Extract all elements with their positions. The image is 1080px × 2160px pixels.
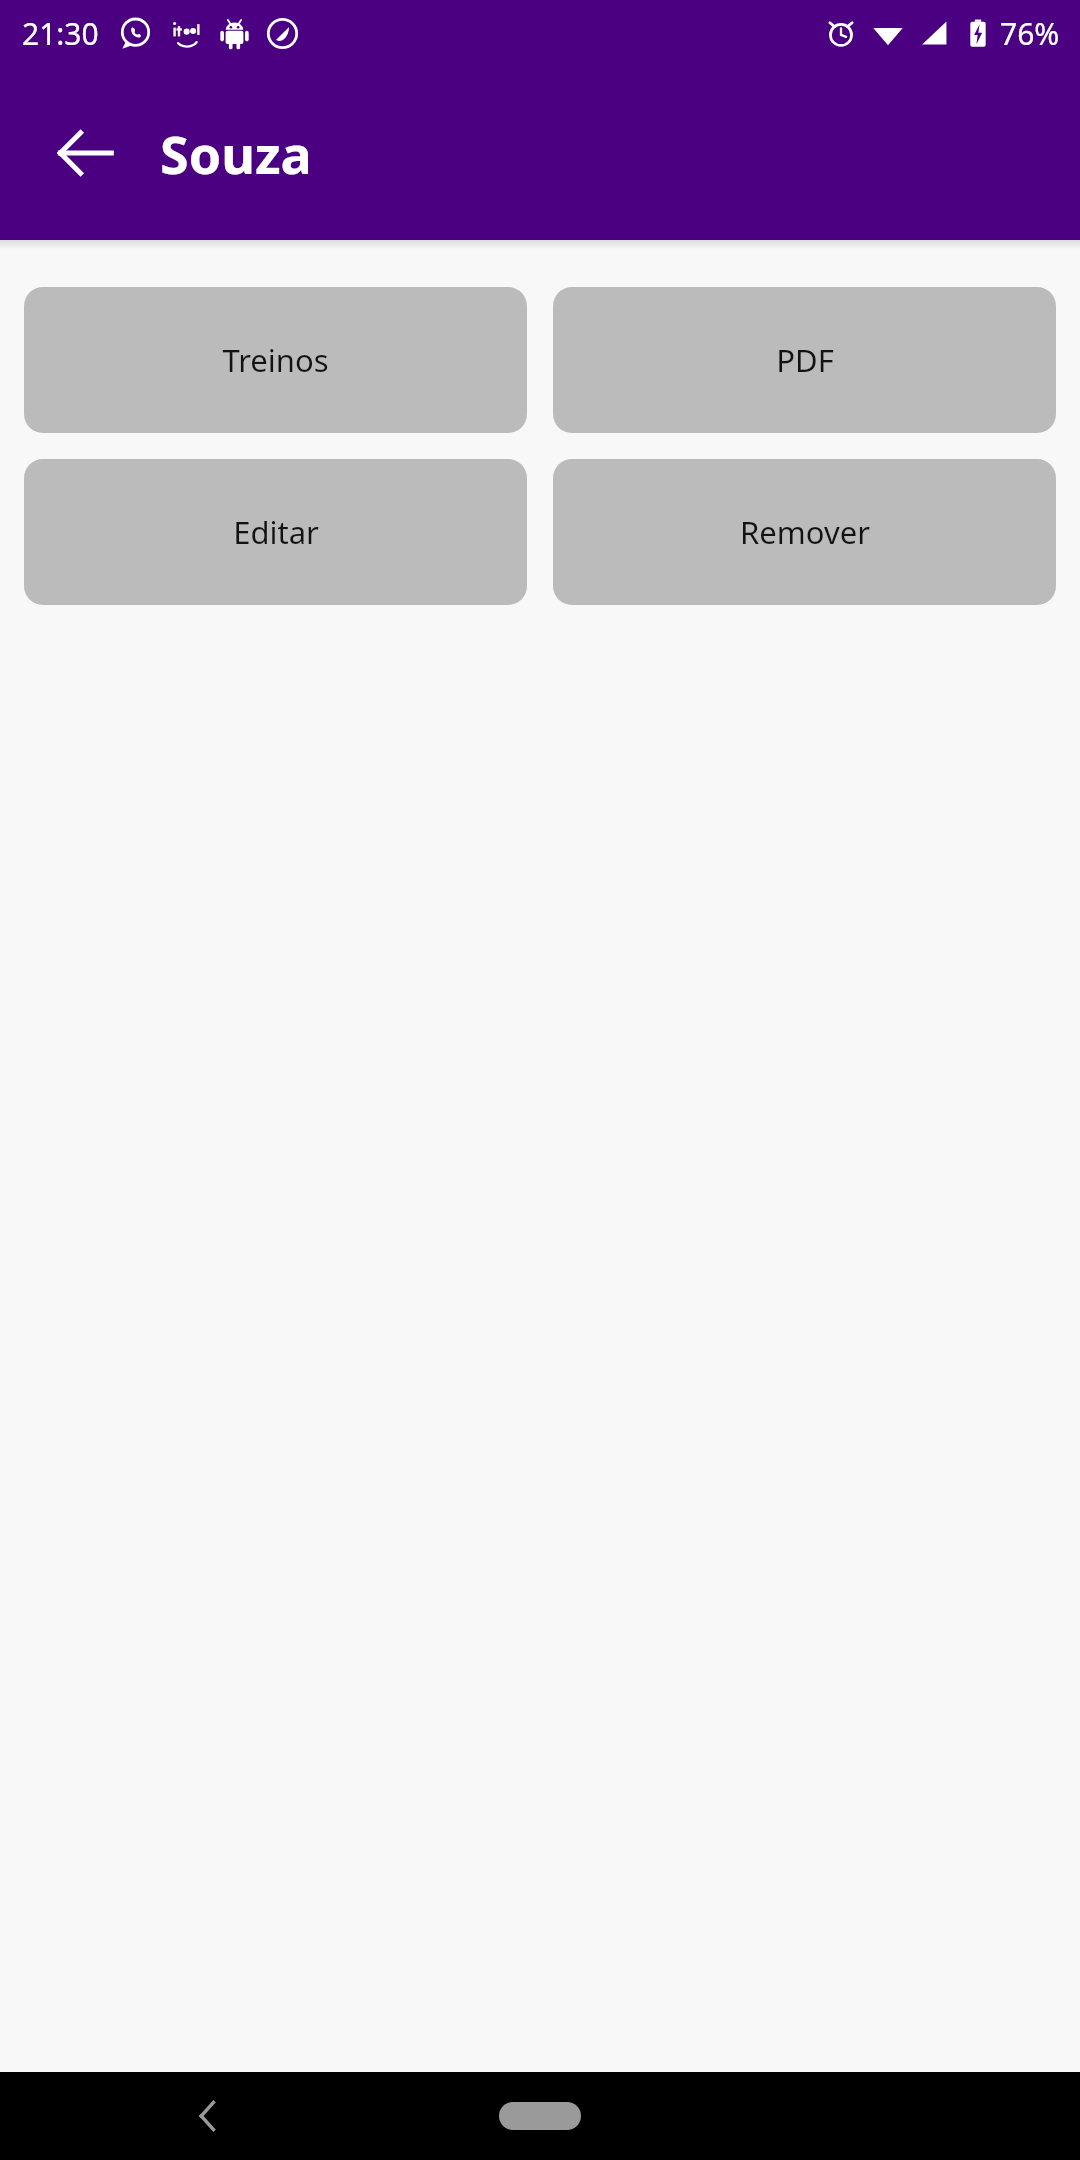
button[interactable]: PDF — [553, 287, 1056, 433]
staticText: Editar — [233, 511, 319, 553]
button[interactable]: Back — [170, 2078, 246, 2154]
staticText: PDF — [776, 339, 834, 381]
button[interactable]: Remover — [553, 459, 1056, 605]
staticText: Souza — [160, 118, 312, 189]
button[interactable]: Back — [31, 99, 139, 207]
button[interactable]: Treinos — [24, 287, 527, 433]
staticText: 21:30 — [22, 13, 99, 54]
staticText: Treinos — [222, 339, 329, 381]
staticText: 76% — [1000, 13, 1060, 54]
staticText: Remover — [740, 511, 870, 553]
button[interactable]: Editar — [24, 459, 527, 605]
button[interactable]: Home — [499, 2102, 581, 2130]
